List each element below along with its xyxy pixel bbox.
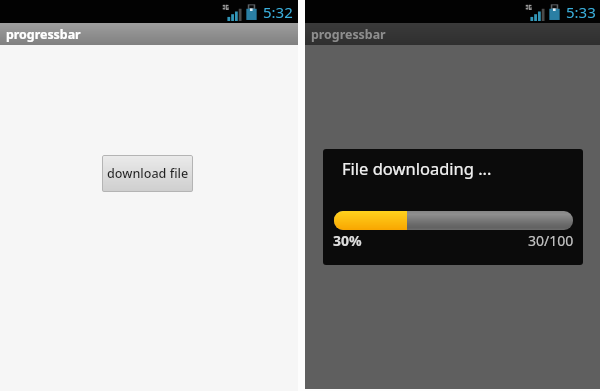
other: Battery: [246, 4, 257, 21]
button[interactable]: progressbar: [305, 23, 600, 45]
other: Battery: [549, 4, 560, 21]
other: Mobile signal 3G: [525, 4, 543, 21]
staticText: 5:32: [263, 2, 293, 22]
staticText: download file: [107, 165, 189, 182]
button[interactable]: progressbar: [0, 23, 298, 45]
other: Mobile signal 3G: [222, 4, 240, 21]
staticText: 5:33: [566, 2, 596, 22]
button[interactable]: download file: [102, 155, 193, 192]
other: Download progress 30 percent: [334, 211, 573, 230]
staticText: 30/100: [528, 231, 574, 250]
staticText: progressbar: [311, 26, 386, 43]
staticText: progressbar: [6, 26, 81, 43]
staticText: 30%: [333, 231, 362, 250]
staticText: File downloading ...: [342, 157, 492, 179]
